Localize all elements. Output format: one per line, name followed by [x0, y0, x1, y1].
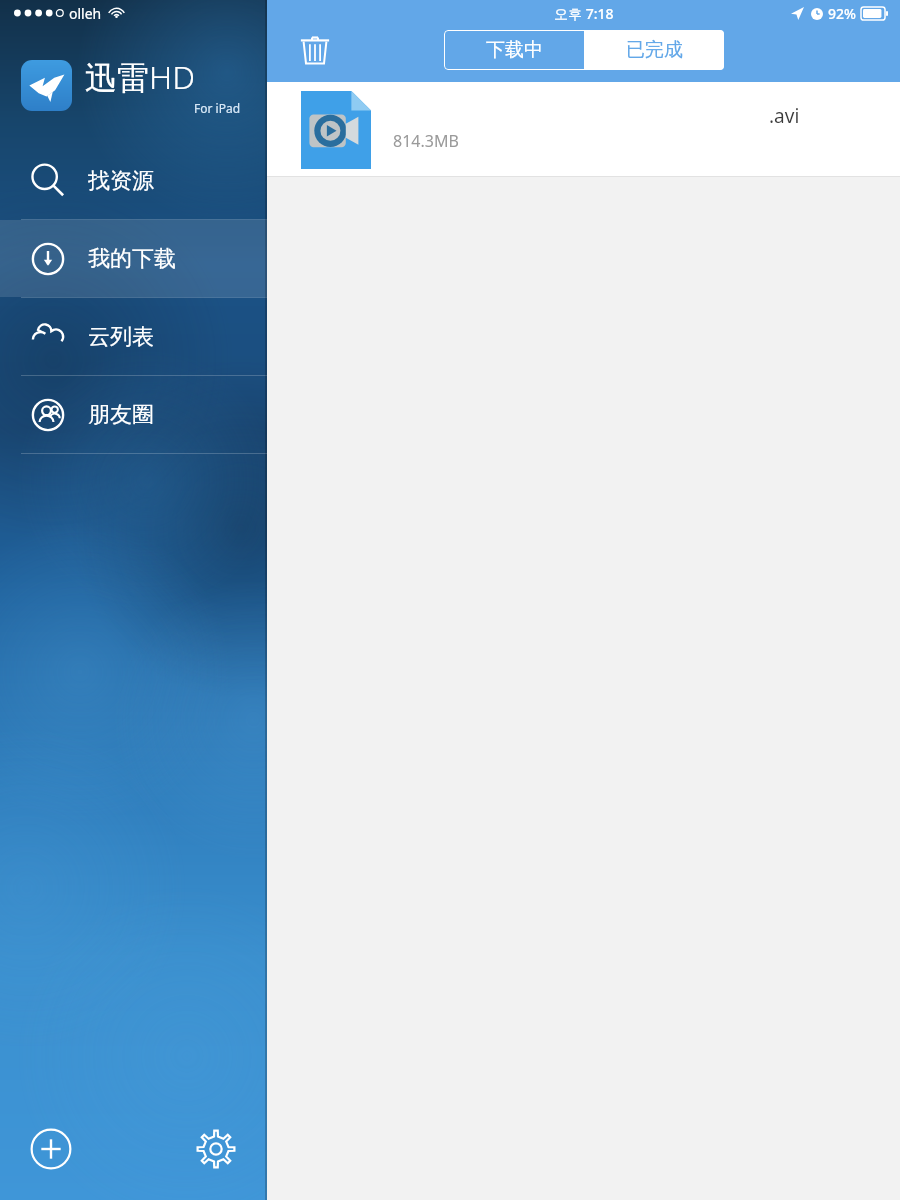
- staticText: 814.3MB: [393, 130, 459, 152]
- button[interactable]: 找资源: [0, 142, 267, 219]
- staticText: olleh: [69, 4, 102, 23]
- staticText: 下载中: [486, 38, 543, 62]
- button[interactable]: 我的下载: [0, 220, 267, 297]
- button[interactable]: Settings: [192, 1125, 240, 1173]
- staticText: For iPad: [194, 100, 241, 116]
- button[interactable]: 已完成: [584, 30, 724, 70]
- button[interactable]: 下载中: [444, 30, 584, 70]
- staticText: .avi: [769, 103, 800, 129]
- button[interactable]: 814.3MB: [267, 82, 900, 177]
- button[interactable]: 朋友圈: [0, 376, 267, 453]
- button[interactable]: 云列表: [0, 298, 267, 375]
- staticText: 找资源: [88, 167, 154, 195]
- staticText: 朋友圈: [88, 401, 154, 429]
- button[interactable]: Delete: [293, 28, 337, 72]
- staticText: 已完成: [626, 38, 683, 62]
- staticText: 92%: [828, 4, 856, 23]
- staticText: 오후 7:18: [554, 4, 614, 23]
- staticText: 我的下载: [88, 245, 176, 273]
- staticText: 云列表: [88, 323, 154, 351]
- staticText: 迅雷HD: [85, 55, 195, 99]
- button[interactable]: Add download: [27, 1125, 75, 1173]
